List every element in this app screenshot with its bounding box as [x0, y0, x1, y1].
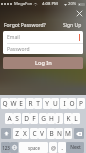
button[interactable]: X	[21, 128, 29, 139]
staticText: C	[32, 129, 37, 138]
button[interactable]: Forgot Password?	[4, 22, 46, 29]
staticText: Next	[70, 144, 81, 151]
staticText: 20%	[68, 1, 77, 7]
button[interactable]: A	[5, 113, 13, 124]
button[interactable]: Change keyboard	[10, 142, 18, 153]
button[interactable]: W	[9, 98, 17, 109]
button[interactable]: E	[17, 98, 25, 109]
button[interactable]: Log In	[3, 57, 83, 69]
button[interactable]: F	[30, 113, 38, 124]
staticText: E	[19, 99, 23, 108]
button[interactable]: @	[49, 142, 57, 153]
staticText: T	[36, 99, 40, 108]
staticText: Sign Up	[63, 22, 82, 29]
button[interactable]: N	[55, 128, 63, 139]
staticText: 4:08 PM	[42, 1, 58, 7]
staticText: K	[66, 114, 71, 123]
button[interactable]: Sign Up	[63, 22, 82, 29]
staticText: N	[57, 129, 62, 138]
staticText: A	[7, 114, 12, 123]
staticText: I	[63, 99, 66, 108]
staticText: O	[69, 99, 75, 108]
staticText: Y	[45, 99, 49, 108]
button[interactable]: J	[55, 113, 63, 124]
staticText: H	[49, 114, 54, 123]
staticText: L	[74, 114, 78, 123]
staticText: V	[40, 129, 44, 138]
staticText: Z	[15, 129, 19, 138]
button[interactable]: Shift	[1, 128, 11, 139]
button[interactable]: Password	[7, 44, 80, 54]
button[interactable]: B	[47, 128, 55, 139]
button[interactable]: space	[19, 142, 48, 153]
button[interactable]: I	[60, 98, 68, 109]
staticText: M	[65, 129, 71, 138]
staticText: Log In	[35, 59, 52, 67]
button[interactable]: Z	[13, 128, 21, 139]
button[interactable]: Y	[43, 98, 51, 109]
staticText: B	[49, 129, 54, 138]
button[interactable]: Email	[7, 31, 80, 43]
staticText: R	[28, 99, 33, 108]
staticText: D	[24, 114, 29, 123]
button[interactable]: D	[22, 113, 30, 124]
staticText: Forgot Password?	[4, 22, 46, 29]
button[interactable]: P	[77, 98, 85, 109]
button[interactable]: .	[58, 142, 66, 153]
staticText: S	[15, 114, 19, 123]
button[interactable]: M	[64, 128, 72, 139]
button[interactable]: T	[34, 98, 42, 109]
button[interactable]: S	[13, 113, 21, 124]
staticText: G	[41, 114, 46, 123]
button[interactable]: Backspace	[74, 128, 84, 139]
button[interactable]: C	[30, 128, 38, 139]
staticText: 123	[2, 145, 10, 151]
button[interactable]: 123	[1, 142, 10, 153]
staticText: .	[61, 143, 63, 152]
staticText: Password	[7, 46, 30, 53]
button[interactable]: H	[47, 113, 55, 124]
button[interactable]: K	[64, 113, 72, 124]
button[interactable]: Q	[1, 98, 9, 109]
button[interactable]: Close	[74, 8, 84, 18]
staticText: U	[53, 99, 58, 108]
button[interactable]: R	[26, 98, 34, 109]
staticText: @	[51, 144, 56, 151]
staticText: space	[28, 145, 40, 151]
button[interactable]: L	[72, 113, 80, 124]
button[interactable]: V	[38, 128, 46, 139]
button[interactable]: Next	[66, 142, 84, 153]
staticText: W	[10, 99, 17, 108]
button[interactable]: O	[68, 98, 76, 109]
button[interactable]: G	[39, 113, 47, 124]
staticText: X	[23, 129, 27, 138]
staticText: Email	[7, 34, 20, 41]
staticText: F	[32, 114, 36, 123]
staticText: MegaFon	[14, 1, 33, 7]
staticText: Q	[2, 99, 8, 108]
staticText: J	[58, 114, 60, 123]
button[interactable]: U	[51, 98, 59, 109]
staticText: P	[79, 99, 83, 108]
